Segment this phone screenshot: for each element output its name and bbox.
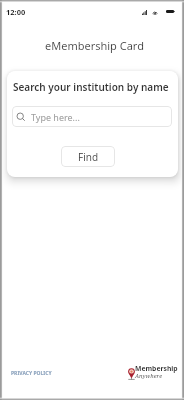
staticText: Anywhere	[135, 372, 163, 380]
staticText: Find	[78, 150, 99, 164]
staticText: PRIVACY POLICY	[11, 370, 52, 377]
other: Search	[17, 113, 25, 121]
button[interactable]: Search	[12, 106, 172, 127]
button[interactable]: Find	[61, 146, 115, 167]
button[interactable]: PRIVACY POLICY	[7, 366, 56, 381]
staticText: Search your institution by name	[13, 80, 169, 94]
staticText: 12:00	[6, 7, 26, 17]
staticText: Type here...	[31, 111, 80, 123]
staticText: Membership	[135, 364, 178, 373]
other: Membership Anywhere logo	[128, 368, 135, 380]
staticText: eMembership Card	[45, 38, 144, 53]
